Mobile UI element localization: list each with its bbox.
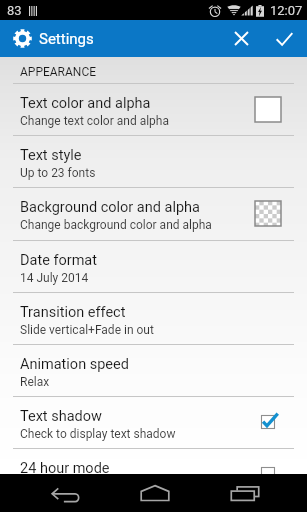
button[interactable]: Back (10, 474, 119, 512)
staticText: Background color and alpha (20, 199, 200, 216)
staticText: Up to 23 fonts (20, 166, 96, 180)
staticText: APPEARANCE (20, 65, 97, 79)
staticText: Change background color and alpha (20, 218, 212, 232)
staticText: Text style (20, 147, 82, 164)
button[interactable]: Animation speed (0, 344, 307, 396)
staticText: 24 hour mode (20, 460, 110, 477)
button[interactable]: Date format (0, 240, 307, 292)
button[interactable]: 24 hour mode (0, 448, 307, 500)
staticText: Slide vertical+Fade in out (20, 323, 154, 337)
button[interactable]: Checked (255, 409, 281, 435)
staticText: Animation speed (20, 356, 129, 373)
staticText: 83 (7, 3, 22, 18)
button[interactable]: Unchecked (255, 461, 281, 487)
button[interactable]: Recent apps (190, 474, 299, 512)
staticText: Settings (39, 30, 94, 48)
button[interactable]: Text color and alpha (0, 83, 307, 135)
staticText: 14 July 2014 (20, 271, 89, 285)
button[interactable]: Cancel (220, 20, 263, 57)
staticText: Relax (20, 375, 50, 389)
button[interactable]: Confirm (263, 20, 306, 57)
staticText: Text color and alpha (20, 95, 151, 112)
staticText: Text shadow (20, 408, 102, 425)
button[interactable]: Pick text colour (255, 97, 281, 122)
staticText: Date format (20, 252, 98, 269)
button[interactable]: Home (100, 474, 209, 512)
button[interactable]: Text shadow (0, 396, 307, 448)
button[interactable]: Text style (0, 135, 307, 187)
staticText: Change text color and alpha (20, 114, 169, 128)
staticText: Transition effect (20, 304, 126, 321)
button[interactable]: Pick background colour (255, 201, 281, 226)
staticText: 12:07 (270, 3, 303, 18)
button[interactable]: Background color and alpha (0, 187, 307, 239)
staticText: Check to display text shadow (20, 427, 176, 441)
button[interactable]: Transition effect (0, 292, 307, 344)
